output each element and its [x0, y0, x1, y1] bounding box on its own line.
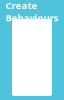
staticText: Create Behaviours	[5, 0, 58, 24]
